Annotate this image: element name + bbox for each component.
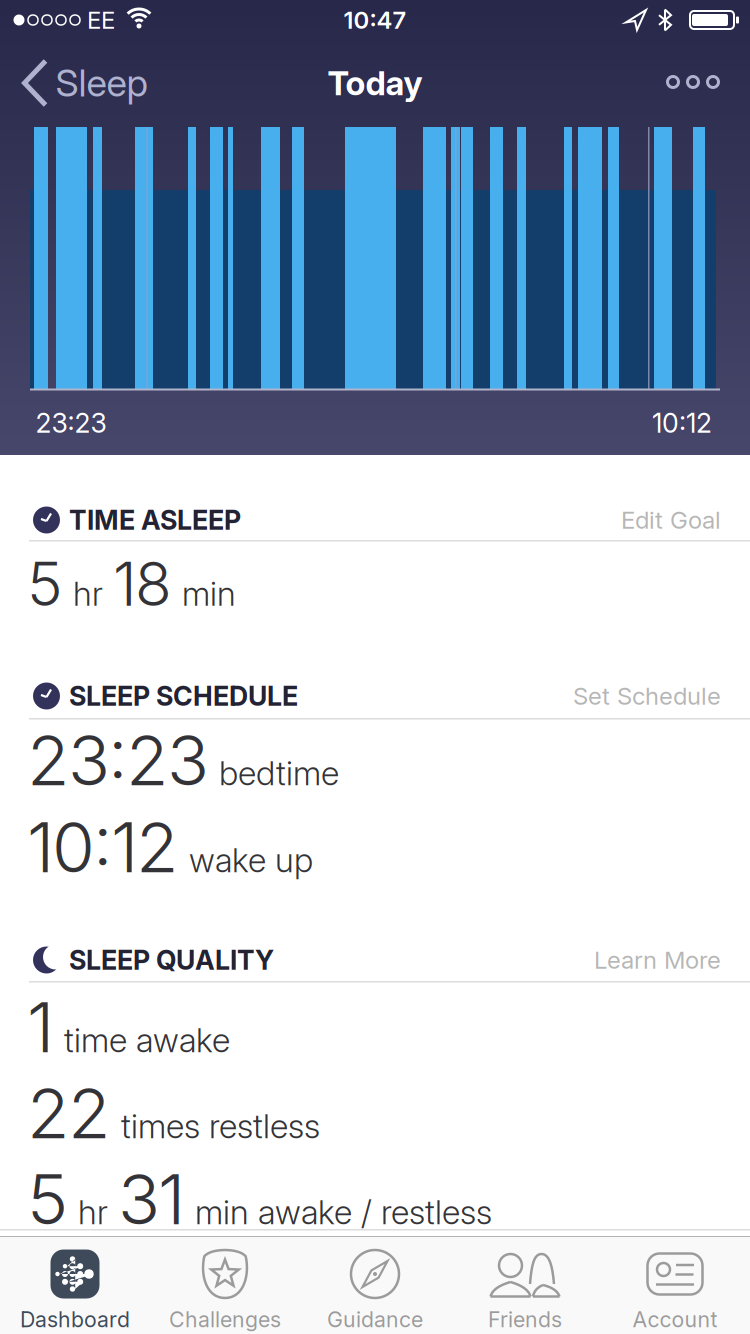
staticText: time awake — [64, 1020, 230, 1060]
staticText: Account — [632, 1307, 717, 1332]
staticText: Edit Goal — [621, 506, 721, 534]
staticText: 23:23 — [35, 407, 106, 439]
button[interactable]: Challenges — [150, 1237, 300, 1334]
button[interactable]: Edit Goal — [621, 506, 721, 534]
staticText: Today — [327, 63, 422, 103]
staticText: SLEEP QUALITY — [69, 944, 274, 976]
staticText: 18 — [113, 549, 172, 619]
staticText: times restless — [121, 1106, 320, 1146]
staticText: min — [182, 574, 236, 613]
staticText: 31 — [118, 1158, 185, 1240]
staticText: EE — [87, 6, 115, 34]
staticText: wake up — [189, 840, 313, 880]
staticText: Challenges — [169, 1307, 281, 1332]
button[interactable]: Learn More — [594, 946, 721, 974]
staticText: Guidance — [327, 1307, 423, 1332]
button[interactable]: Account — [600, 1237, 750, 1334]
staticText: bedtime — [219, 753, 339, 793]
button[interactable]: More — [667, 76, 718, 87]
staticText: 10:12 — [652, 407, 712, 439]
staticText: hr — [73, 574, 103, 613]
staticText: Friends — [488, 1307, 562, 1332]
button[interactable]: Friends — [450, 1237, 600, 1334]
staticText: TIME ASLEEP — [69, 504, 241, 536]
staticText: 1 — [27, 986, 54, 1068]
staticText: 23:23 — [27, 719, 209, 801]
staticText: Dashboard — [20, 1307, 130, 1332]
button[interactable]: Set Schedule — [573, 682, 721, 710]
staticText: Learn More — [594, 946, 721, 974]
staticText: 22 — [27, 1072, 111, 1154]
staticText: Set Schedule — [573, 682, 721, 710]
staticText: 5 — [27, 549, 63, 619]
button[interactable]: Dashboard — [0, 1237, 150, 1334]
button[interactable]: Guidance — [300, 1237, 450, 1334]
staticText: SLEEP SCHEDULE — [69, 680, 298, 712]
staticText: 10:12 — [27, 806, 179, 888]
staticText: Sleep — [55, 61, 147, 105]
staticText: min awake / restless — [195, 1192, 492, 1232]
button[interactable]: Sleep — [24, 61, 147, 105]
staticText: 10:47 — [343, 6, 406, 34]
staticText: hr — [78, 1192, 108, 1232]
staticText: 5 — [27, 1158, 68, 1240]
